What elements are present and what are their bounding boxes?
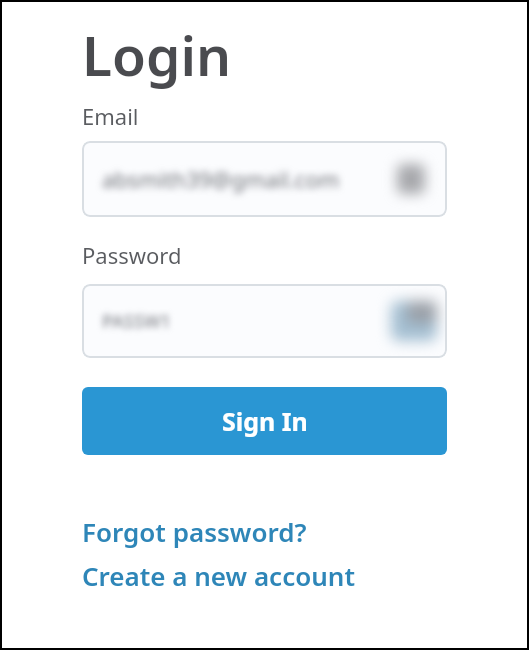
staticText: Login <box>82 17 232 92</box>
staticText: absmith39@gmail.com <box>102 164 340 194</box>
staticText: Password <box>82 240 182 270</box>
staticText: Email <box>82 101 139 131</box>
button[interactable]: absmith39@gmail.com <box>82 141 447 217</box>
staticText: PASSW1 <box>102 309 171 334</box>
button[interactable]: Forgot password? <box>82 514 307 549</box>
button[interactable]: Sign In <box>82 387 447 455</box>
button[interactable]: PASSW1 <box>82 284 447 358</box>
button[interactable]: Create a new account <box>82 558 355 593</box>
staticText: Sign In <box>222 404 308 438</box>
